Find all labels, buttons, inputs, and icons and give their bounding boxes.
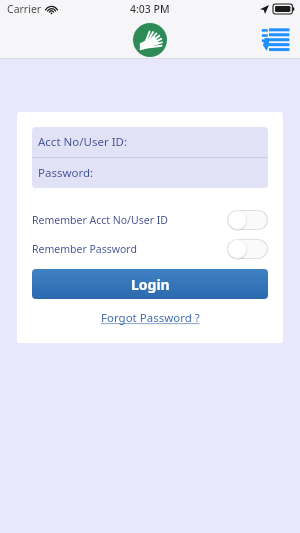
staticText: Carrier [7, 2, 42, 16]
button[interactable]: Toggle off [227, 239, 268, 259]
button[interactable]: Forgot Password ? [101, 310, 200, 326]
button[interactable]: Enroll [260, 26, 290, 52]
button[interactable]: Home logo [133, 23, 167, 57]
staticText: Remember Acct No/User ID [32, 213, 168, 227]
button[interactable]: Login [32, 269, 268, 299]
button[interactable]: Password: [32, 158, 268, 188]
staticText: Forgot Password ? [101, 310, 200, 326]
staticText: Acct No/User ID: [38, 134, 128, 150]
staticText: Remember Password [32, 242, 137, 256]
staticText: Login [131, 275, 170, 294]
button[interactable]: Acct No/User ID: [32, 127, 268, 157]
staticText: Password: [38, 165, 94, 181]
button[interactable]: Toggle off [227, 210, 268, 230]
staticText: 4:03 PM [130, 2, 170, 16]
